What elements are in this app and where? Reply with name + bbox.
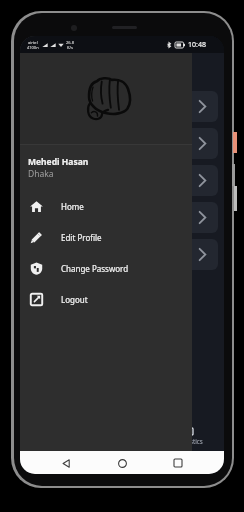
staticText: Mehedi Hasan — [28, 156, 89, 168]
button[interactable]: Recent apps — [168, 453, 188, 473]
staticText: Dhaka — [28, 168, 54, 180]
button[interactable]: Statistics — [156, 422, 224, 450]
staticText: Logout — [61, 294, 88, 305]
staticText: Change Password — [61, 263, 129, 274]
button[interactable] — [26, 239, 218, 270]
staticText: 4100n — [27, 45, 39, 50]
button[interactable]: Back — [56, 453, 76, 473]
button[interactable]: Home — [20, 191, 192, 222]
staticText: 26.8 — [66, 40, 74, 45]
staticText: Home — [61, 201, 84, 212]
staticText: airtel — [28, 40, 38, 45]
button[interactable] — [26, 165, 218, 196]
button[interactable] — [26, 202, 218, 233]
staticText: Statistics — [177, 437, 203, 445]
button[interactable]: Logout — [20, 284, 192, 315]
button[interactable]: Home — [112, 453, 132, 473]
button[interactable] — [26, 91, 218, 122]
staticText: Edit Profile — [61, 232, 102, 243]
staticText: K/s — [67, 45, 73, 50]
button[interactable] — [26, 128, 218, 159]
staticText: 10:48 — [188, 40, 206, 50]
button[interactable]: Change Password — [20, 253, 192, 284]
button[interactable]: Edit Profile — [20, 222, 192, 253]
